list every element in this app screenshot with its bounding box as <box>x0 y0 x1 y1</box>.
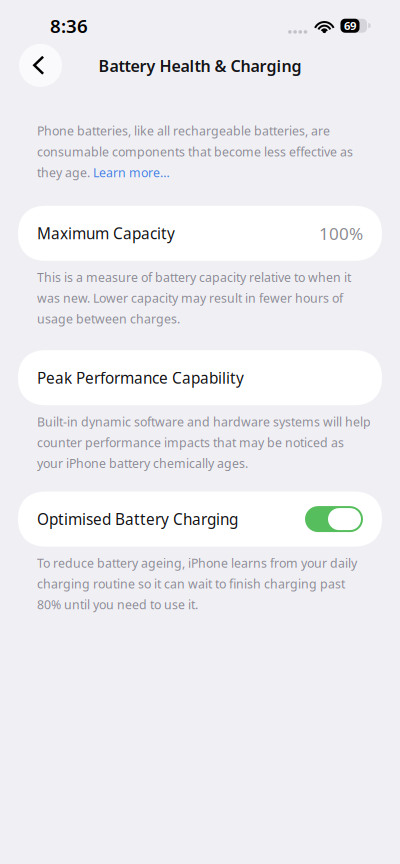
staticText: Optimised Battery Charging <box>37 509 238 530</box>
button[interactable]: Maximum Capacity <box>18 206 382 261</box>
staticText: 8:36 <box>50 13 88 38</box>
staticText: Battery Health & Charging <box>98 55 301 77</box>
staticText: 100% <box>319 222 363 245</box>
staticText: Peak Performance Capability <box>37 367 244 388</box>
button[interactable]: Peak Performance Capability <box>18 350 382 405</box>
staticText: Maximum Capacity <box>37 223 175 244</box>
button[interactable]: Back <box>19 44 62 87</box>
staticText: 69 <box>344 18 356 33</box>
staticText: To reduce battery ageing, iPhone learns … <box>37 555 357 613</box>
staticText: Built-in dynamic software and hardware s… <box>37 413 371 472</box>
staticText: This is a measure of battery capacity re… <box>37 269 351 327</box>
staticText: Phone batteries, like all rechargeable b… <box>37 122 353 181</box>
button[interactable]: Optimised Battery Charging <box>18 492 382 547</box>
